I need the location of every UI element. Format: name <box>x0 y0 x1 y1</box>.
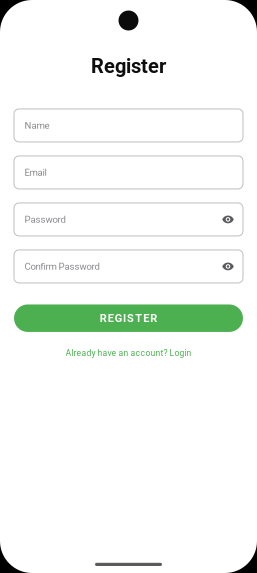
staticText: Name <box>24 120 49 131</box>
staticText: Email <box>24 167 46 178</box>
staticText: Register <box>91 54 166 78</box>
button[interactable]: Show Password <box>214 215 234 224</box>
button[interactable]: Email <box>14 156 243 189</box>
button[interactable]: Already have an account? Login <box>65 344 191 362</box>
button[interactable]: Name <box>14 109 243 142</box>
staticText: Already have an account? Login <box>65 348 191 358</box>
staticText: REGISTER <box>100 312 157 325</box>
button[interactable]: Confirm Password <box>14 250 243 283</box>
staticText: Password <box>24 214 65 225</box>
button[interactable]: REGISTER <box>14 304 243 332</box>
staticText: Confirm Password <box>24 261 99 272</box>
button[interactable]: Show Confirm Password <box>214 262 234 271</box>
button[interactable]: Password <box>14 203 243 236</box>
